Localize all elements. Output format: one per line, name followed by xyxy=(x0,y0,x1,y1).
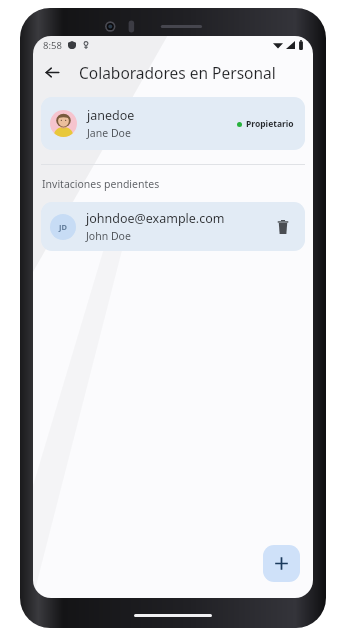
staticText: janedoe xyxy=(87,107,135,124)
button[interactable]: Añadir colaborador xyxy=(263,545,300,582)
staticText: JD xyxy=(59,222,67,232)
button[interactable]: janedoe xyxy=(41,97,305,150)
staticText: Invitaciones pendientes xyxy=(42,177,160,191)
staticText: 8:58 xyxy=(43,39,62,52)
staticText: Colaboradores en Personal xyxy=(79,62,276,83)
staticText: Propietario xyxy=(246,118,294,130)
staticText: John Doe xyxy=(86,229,131,243)
staticText: johndoe@example.com xyxy=(86,210,225,227)
staticText: Jane Doe xyxy=(87,126,131,140)
button[interactable]: Eliminar invitación xyxy=(270,214,296,240)
button[interactable]: JD xyxy=(41,202,305,251)
button[interactable]: Atrás xyxy=(37,57,67,87)
